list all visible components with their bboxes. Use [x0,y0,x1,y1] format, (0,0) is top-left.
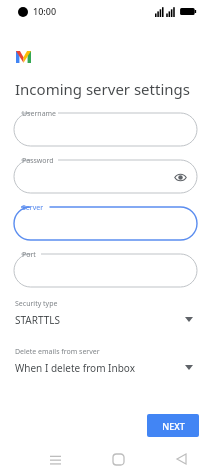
button[interactable]: Password [14,160,197,193]
staticText: Incoming server settings [15,79,190,99]
staticText: 10:00 [33,5,57,17]
button[interactable]: Delete emails from server [0,343,211,377]
staticText: Port [22,250,36,260]
button[interactable]: Back [168,446,194,472]
button[interactable]: Port [14,254,197,287]
staticText: STARTTLS [15,313,61,327]
staticText: Delete emails from server [15,347,100,357]
staticText: When I delete from Inbox [15,361,135,375]
staticText: Security type [15,299,58,309]
button[interactable]: Security type [0,295,211,329]
button[interactable]: Recent apps [42,446,68,472]
button[interactable]: Show password [172,169,188,185]
staticText: NEXT [162,420,185,432]
button[interactable]: Username [14,113,197,146]
staticText: Username [22,109,57,119]
button[interactable]: Home [105,446,131,472]
staticText: Server [22,203,44,213]
button[interactable]: Server [14,207,197,240]
button[interactable]: NEXT [147,414,199,437]
staticText: Password [22,156,54,166]
